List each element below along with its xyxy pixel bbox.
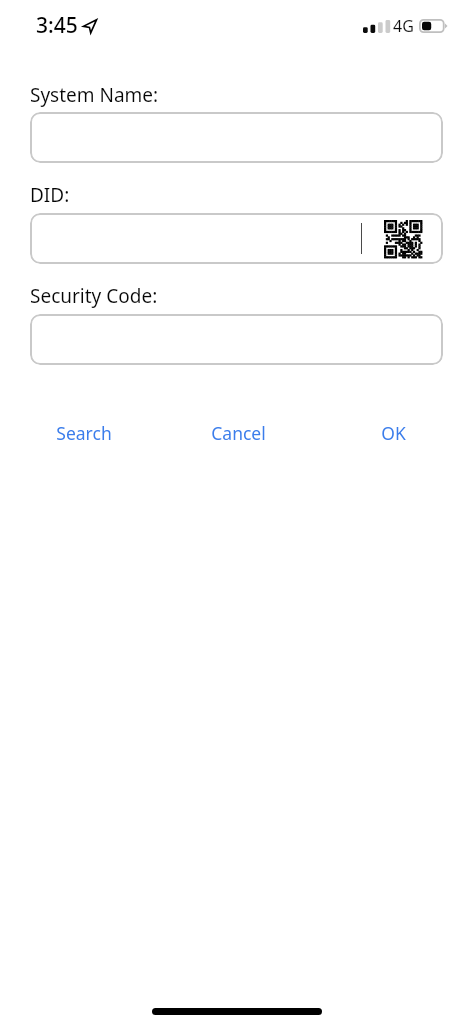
staticText: 3:45	[36, 11, 78, 40]
staticText: System Name:	[30, 82, 159, 108]
button[interactable]: Scan QR code	[379, 215, 426, 262]
staticText: Security Code:	[30, 283, 158, 309]
button[interactable]: Search	[7, 415, 161, 451]
button[interactable]: OK	[316, 415, 471, 451]
staticText: 4G	[393, 15, 414, 37]
button[interactable]: System Name	[30, 112, 443, 163]
staticText: DID:	[30, 182, 70, 208]
staticText: Search	[56, 421, 112, 445]
button[interactable]: Cancel	[161, 415, 316, 451]
staticText: OK	[381, 421, 406, 445]
staticText: Cancel	[211, 421, 266, 445]
button[interactable]: DID	[30, 213, 443, 264]
button[interactable]: Security Code	[30, 314, 443, 365]
